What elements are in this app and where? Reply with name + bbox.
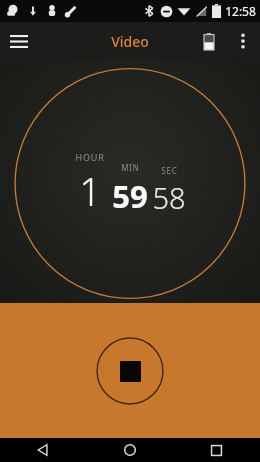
staticText: SEC: [161, 165, 178, 176]
staticText: 1: [79, 165, 101, 217]
button[interactable]: Open navigation menu: [0, 22, 38, 60]
staticText: 59: [112, 175, 148, 217]
staticText: MIN: [121, 162, 140, 173]
button[interactable]: Stop recording: [96, 337, 164, 405]
button[interactable]: Battery status: [192, 24, 226, 58]
button[interactable]: Back: [0, 438, 86, 462]
staticText: 58: [152, 178, 186, 217]
button[interactable]: HOUR: [75, 151, 186, 217]
button[interactable]: More options: [226, 24, 260, 58]
button[interactable]: Home: [86, 438, 173, 462]
staticText: 12:58: [225, 3, 256, 19]
button[interactable]: Recent apps: [173, 438, 260, 462]
staticText: Video: [111, 32, 149, 51]
staticText: HOUR: [75, 151, 105, 163]
